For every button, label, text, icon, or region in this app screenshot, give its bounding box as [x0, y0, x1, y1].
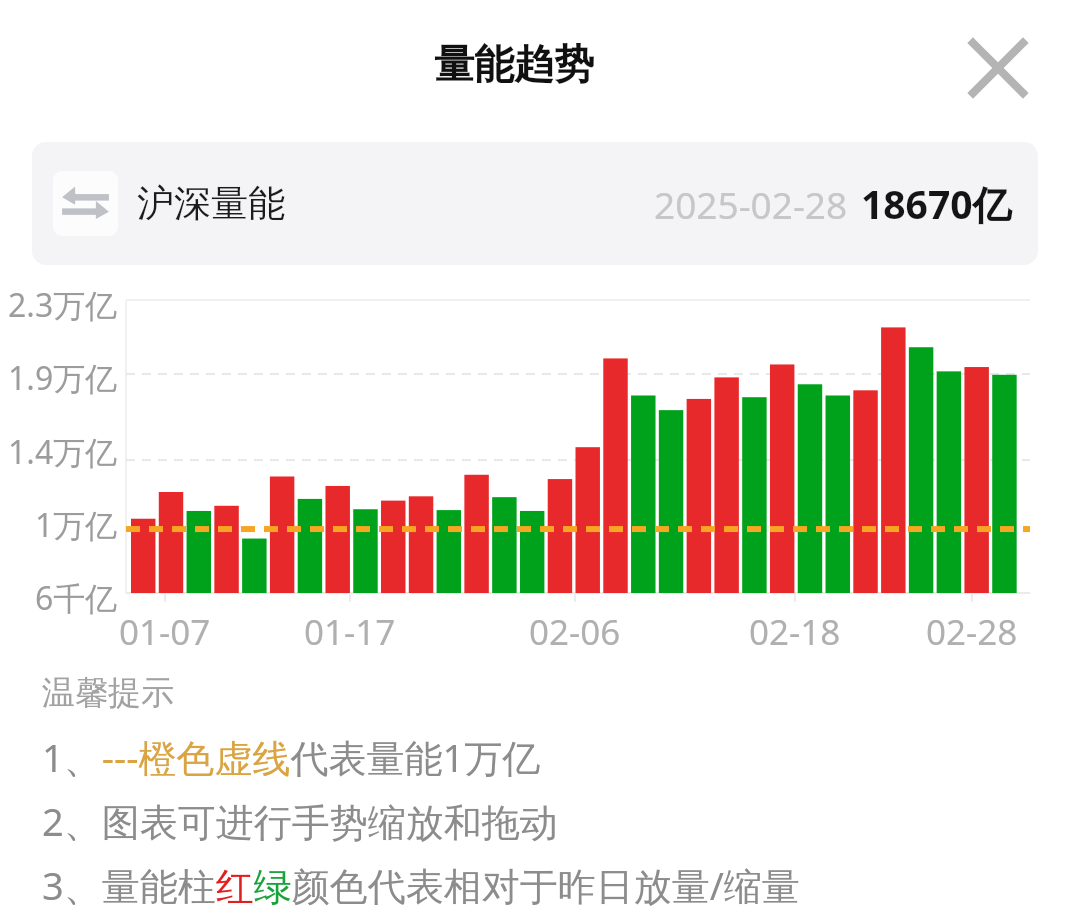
staticText: 6千亿 — [35, 576, 118, 620]
staticText: 2.3万亿 — [8, 283, 118, 327]
staticText: 01-17 — [304, 608, 396, 656]
staticText: 2025-02-28 — [654, 179, 848, 229]
staticText: 沪深量能 — [137, 180, 285, 227]
staticText: 量能趋势 — [434, 39, 594, 89]
staticText: 1.4万亿 — [8, 430, 118, 474]
staticText: 02-18 — [749, 608, 841, 656]
staticText: 1.9万亿 — [8, 356, 118, 400]
staticText: 18670亿 — [861, 177, 1012, 230]
button[interactable]: Close — [962, 32, 1034, 104]
button[interactable]: 沪深量能 — [32, 142, 1038, 265]
staticText: 01-07 — [119, 608, 211, 656]
staticText: 1万亿 — [35, 503, 118, 547]
staticText: 1、---橙色虚线代表量能1万亿 — [42, 731, 541, 783]
staticText: 温馨提示 — [42, 672, 174, 714]
staticText: 02-28 — [926, 608, 1018, 656]
staticText: 02-06 — [529, 608, 621, 656]
staticText: 3、量能柱红绿颜色代表相对于昨日放量/缩量 — [42, 859, 800, 911]
staticText: 2、图表可进行手势缩放和拖动 — [42, 795, 558, 847]
